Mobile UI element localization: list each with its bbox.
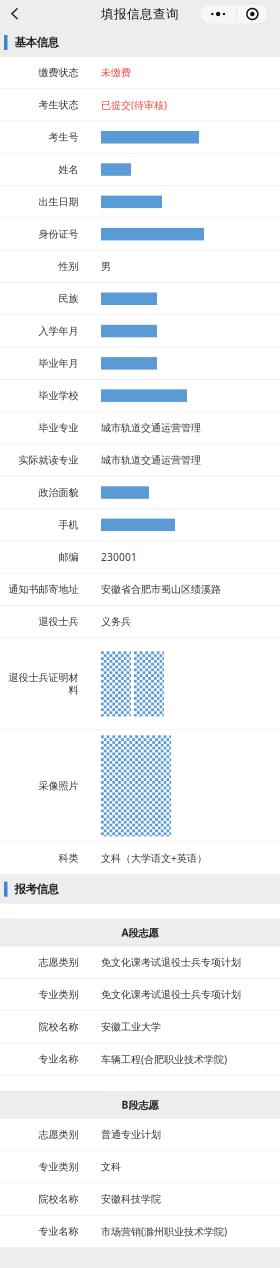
staticText: 专业类别: [38, 1161, 78, 1173]
staticText: B段志愿: [121, 1098, 158, 1112]
staticText: 科类: [58, 852, 78, 864]
staticText: 出生日期: [38, 196, 78, 208]
staticText: 基本信息: [14, 35, 58, 50]
staticText: 实际就读专业: [18, 454, 78, 467]
staticText: 毕业年月: [38, 357, 78, 370]
staticText: A段志愿: [121, 926, 158, 940]
staticText: 车辆工程(合肥职业技术学院): [101, 1052, 227, 1066]
staticText: 填报信息查询: [101, 6, 179, 22]
button[interactable]: Back: [0, 0, 42, 28]
button[interactable]: More options: [200, 4, 236, 24]
staticText: 免文化课考试退役士兵专项计划: [101, 988, 241, 1001]
staticText: 文科（大学语文+英语）: [101, 851, 207, 865]
staticText: 志愿类别: [38, 1128, 78, 1141]
staticText: 专业名称: [38, 1225, 78, 1238]
staticText: 手机: [58, 519, 78, 531]
staticText: 免文化课考试退役士兵专项计划: [101, 956, 241, 969]
staticText: 政治面貌: [38, 486, 78, 499]
staticText: 义务兵: [101, 615, 131, 628]
staticText: 考生状态: [38, 99, 78, 111]
staticText: 男: [101, 260, 111, 273]
staticText: 安徽科技学院: [101, 1193, 161, 1205]
staticText: 文科: [101, 1161, 121, 1173]
staticText: 安徽工业大学: [101, 1021, 161, 1033]
staticText: 报考信息: [14, 882, 58, 896]
staticText: 姓名: [58, 163, 78, 176]
staticText: 民族: [58, 292, 78, 305]
button[interactable]: Close mini program: [237, 4, 268, 24]
staticText: 邮编: [58, 551, 78, 563]
staticText: 退役士兵: [38, 615, 78, 628]
staticText: 未缴费: [101, 66, 131, 79]
staticText: 志愿类别: [38, 956, 78, 969]
staticText: 身份证号: [38, 228, 78, 240]
staticText: 通知书邮寄地址: [8, 583, 78, 596]
staticText: 退役士兵证明材料: [8, 671, 78, 696]
staticText: 采像照片: [38, 780, 78, 792]
staticText: 城市轨道交通运营管理: [101, 422, 201, 434]
staticText: 城市轨道交通运营管理: [101, 454, 201, 467]
staticText: 市场营销(滁州职业技术学院): [101, 1225, 227, 1238]
staticText: 缴费状态: [38, 66, 78, 79]
staticText: 专业名称: [38, 1053, 78, 1066]
staticText: 院校名称: [38, 1021, 78, 1033]
staticText: 入学年月: [38, 325, 78, 337]
staticText: 毕业专业: [38, 422, 78, 434]
staticText: 性别: [58, 260, 78, 273]
staticText: 毕业学校: [38, 389, 78, 402]
staticText: 230001: [101, 550, 137, 564]
staticText: 院校名称: [38, 1193, 78, 1205]
staticText: 安徽省合肥市蜀山区绩溪路: [101, 583, 221, 596]
staticText: 考生号: [48, 131, 78, 144]
staticText: 专业类别: [38, 988, 78, 1001]
staticText: 已提交(待审核): [101, 98, 167, 112]
staticText: 普通专业计划: [101, 1128, 161, 1141]
